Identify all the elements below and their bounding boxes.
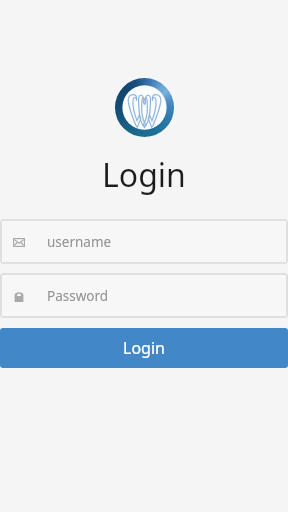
staticText: Login <box>123 337 165 359</box>
button[interactable]: Login <box>0 328 288 368</box>
button[interactable]: username <box>0 219 288 264</box>
button[interactable]: Password <box>0 273 288 318</box>
staticText: Login <box>102 153 186 197</box>
staticText: username <box>47 233 112 251</box>
staticText: Password <box>47 287 109 305</box>
